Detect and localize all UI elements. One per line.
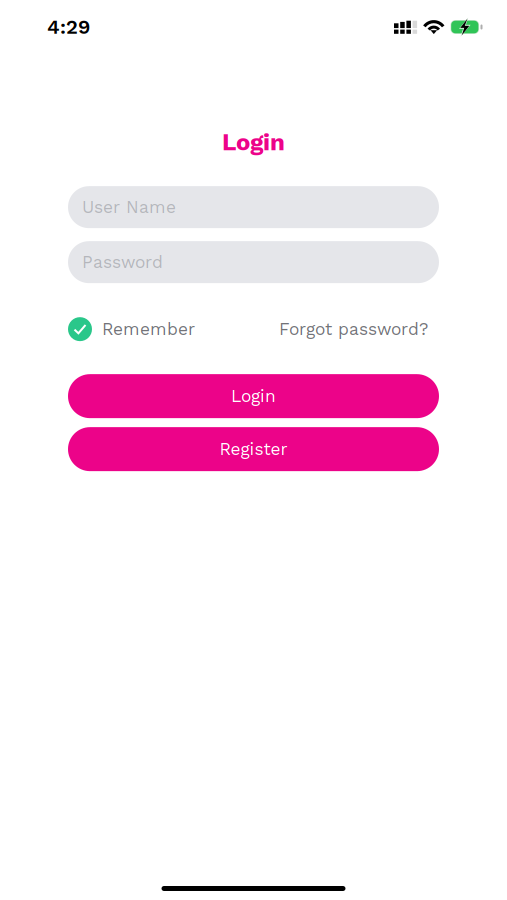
staticText: 4:29 bbox=[47, 15, 90, 39]
button[interactable]: Login bbox=[68, 374, 439, 418]
button[interactable]: Register bbox=[68, 427, 439, 471]
staticText: Password bbox=[82, 252, 163, 272]
staticText: Login bbox=[222, 128, 285, 156]
button[interactable]: Forgot password? bbox=[279, 319, 428, 339]
button[interactable]: Password bbox=[68, 241, 439, 283]
staticText: User Name bbox=[82, 197, 176, 217]
staticText: Forgot password? bbox=[279, 319, 428, 339]
button[interactable]: Remember bbox=[68, 317, 195, 341]
staticText: Login bbox=[231, 386, 276, 406]
button[interactable]: User Name bbox=[68, 186, 439, 228]
staticText: Register bbox=[219, 439, 287, 459]
staticText: Remember bbox=[102, 319, 195, 339]
